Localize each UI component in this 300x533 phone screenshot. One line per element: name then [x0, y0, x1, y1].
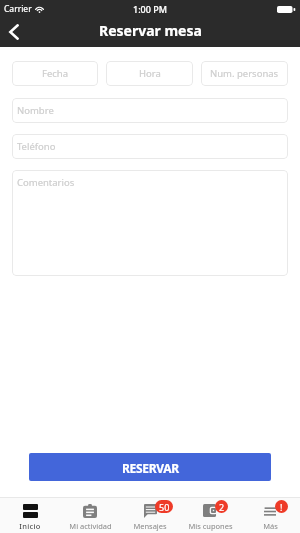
staticText: RESERVAR — [122, 460, 179, 476]
staticText: Nombre — [17, 104, 54, 117]
button[interactable]: 2 — [180, 498, 240, 533]
button[interactable]: Teléfono — [12, 134, 288, 159]
staticText: 1:00 PM — [133, 3, 167, 15]
button[interactable]: Fecha — [12, 61, 98, 86]
button[interactable]: Nombre — [12, 98, 288, 123]
button[interactable]: Num. personas — [201, 61, 288, 86]
staticText: Mi actividad — [69, 521, 112, 531]
button[interactable]: ! — [240, 498, 300, 533]
staticText: Mis cupones — [188, 521, 233, 531]
staticText: 2 — [219, 501, 225, 513]
button[interactable]: Inicio — [0, 498, 60, 533]
button[interactable]: Back — [0, 17, 29, 46]
staticText: Carrier — [4, 3, 32, 15]
staticText: Comentarios — [17, 176, 75, 189]
button[interactable]: 50 — [120, 498, 180, 533]
staticText: Inicio — [19, 521, 41, 531]
staticText: Mensajes — [133, 521, 167, 531]
staticText: Más — [263, 521, 278, 531]
staticText: Hora — [139, 67, 161, 80]
staticText: Num. personas — [210, 67, 279, 80]
staticText: Fecha — [42, 67, 69, 80]
button[interactable]: Hora — [106, 61, 193, 86]
staticText: ! — [280, 501, 283, 513]
button[interactable]: Comentarios — [12, 170, 288, 276]
staticText: 50 — [159, 501, 170, 513]
staticText: Teléfono — [17, 140, 56, 153]
staticText: Reservar mesa — [99, 21, 202, 40]
button[interactable]: RESERVAR — [29, 453, 271, 481]
button[interactable]: Mi actividad — [60, 498, 120, 533]
